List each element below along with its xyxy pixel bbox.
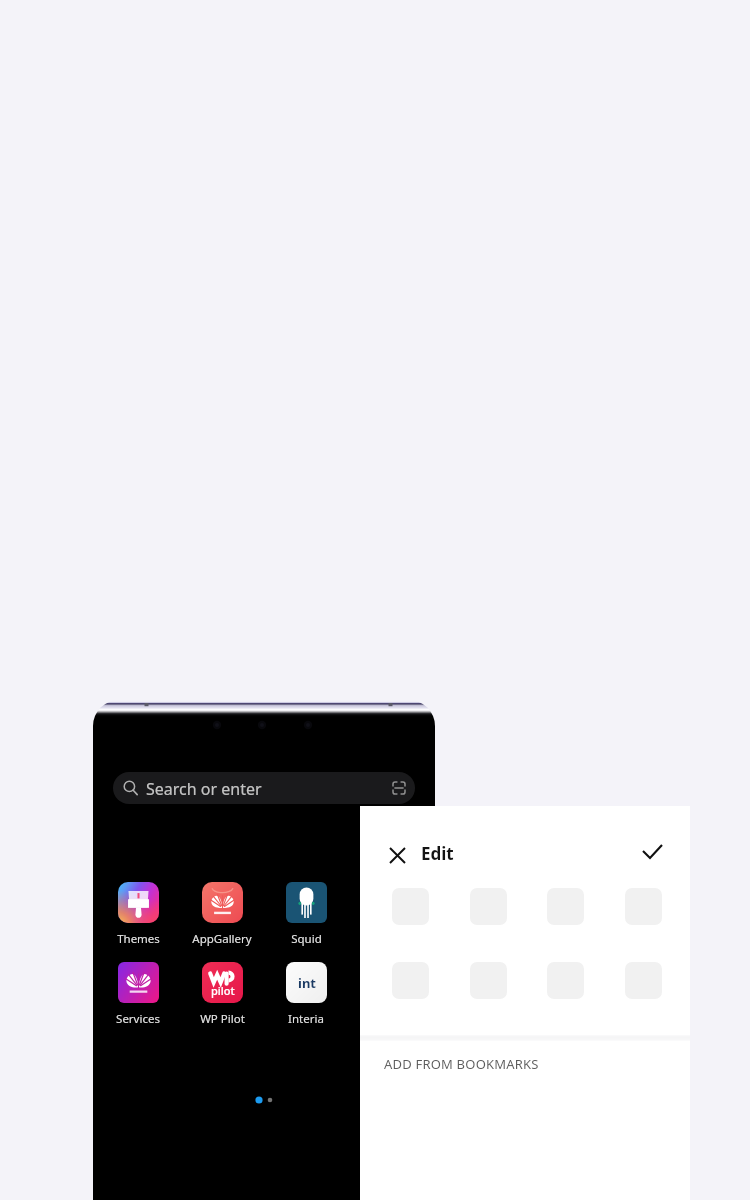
button[interactable]: AppGallery (177, 882, 267, 947)
staticText: WP Pilot (200, 1011, 245, 1027)
staticText: Services (116, 1011, 160, 1027)
staticText: Themes (117, 931, 160, 947)
button[interactable]: Done (628, 828, 674, 874)
button[interactable]: Services (93, 962, 183, 1027)
staticText: Squid (291, 931, 322, 947)
button[interactable]: pilot (177, 962, 267, 1027)
staticText: ADD FROM BOOKMARKS (384, 1055, 539, 1073)
button[interactable]: ADD FROM BOOKMARKS (360, 1041, 690, 1089)
staticText: Search or enter (146, 778, 262, 800)
staticText: Edit (421, 842, 454, 865)
button[interactable]: int (261, 962, 351, 1027)
staticText: int (298, 974, 316, 992)
button[interactable]: Search or enter (113, 772, 415, 804)
button[interactable]: Squid (261, 882, 351, 947)
staticText: Interia (288, 1011, 324, 1027)
button[interactable]: Close (376, 834, 418, 876)
staticText: AppGallery (192, 931, 252, 947)
button[interactable]: Themes (93, 882, 183, 947)
button[interactable]: Scan code (385, 774, 413, 802)
staticText: pilot (211, 983, 235, 998)
